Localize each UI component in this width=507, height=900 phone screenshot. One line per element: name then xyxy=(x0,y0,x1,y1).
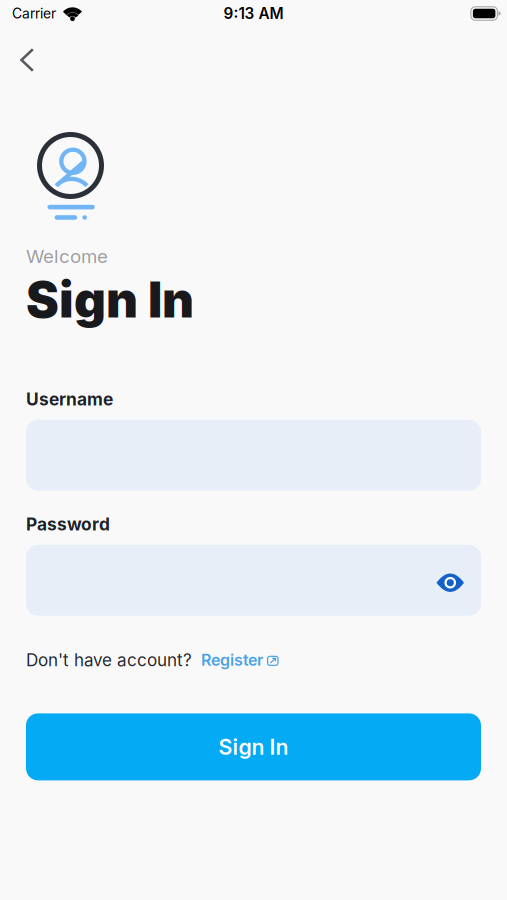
button[interactable]: Sign In xyxy=(26,713,481,780)
staticText: Don't have account? xyxy=(26,650,192,670)
staticText: Username xyxy=(26,389,113,410)
staticText: Password xyxy=(26,514,110,535)
staticText: Sign In xyxy=(218,734,288,760)
staticText: Register xyxy=(201,650,263,670)
button[interactable]: Register xyxy=(201,650,279,670)
staticText: 9:13 AM xyxy=(223,4,283,23)
staticText: Welcome xyxy=(26,245,108,268)
button[interactable]: Back xyxy=(5,38,49,82)
button[interactable]: Show password xyxy=(436,557,481,603)
staticText: Sign In xyxy=(26,270,194,329)
staticText: Carrier xyxy=(12,5,56,22)
